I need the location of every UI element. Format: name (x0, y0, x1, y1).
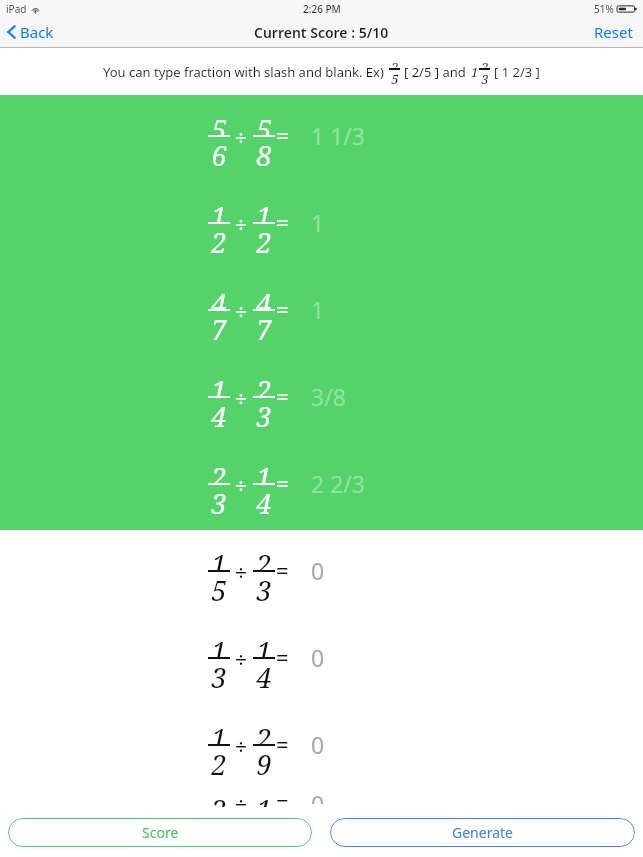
staticText: 2 (211, 746, 227, 775)
staticText: 3 (256, 572, 272, 601)
staticText: 2 2/3 (311, 468, 366, 499)
staticText: 1 (211, 372, 227, 396)
staticText: 2 (256, 372, 272, 396)
button[interactable]: Back (0, 19, 64, 45)
staticText: 51% (594, 2, 614, 16)
staticText: [ 2/5 ] and (404, 63, 466, 81)
staticText: ÷ (235, 646, 248, 675)
staticText: ÷ (235, 385, 248, 414)
button[interactable]: 2 (0, 443, 643, 530)
staticText: 4 (256, 485, 272, 514)
staticText: 7 (211, 311, 227, 340)
button[interactable]: Generate (330, 818, 635, 847)
staticText: 2 (211, 224, 227, 253)
staticText: = (276, 381, 289, 411)
staticText: 4 (256, 285, 272, 309)
staticText: 3 (211, 659, 227, 688)
staticText: 1 (256, 791, 272, 807)
staticText: ÷ (235, 791, 248, 807)
staticText: 1 (471, 63, 479, 81)
staticText: 1 (256, 198, 272, 222)
staticText: = (276, 787, 289, 803)
button[interactable]: 1 (0, 182, 643, 269)
staticText: 3 (211, 485, 227, 514)
button[interactable]: 5 (0, 95, 643, 182)
staticText: You can type fraction with slash and bla… (103, 63, 384, 81)
staticText: 8 (256, 137, 272, 166)
button[interactable]: 1 (0, 617, 643, 704)
button[interactable]: 1 (0, 356, 643, 443)
staticText: 1 (211, 198, 227, 222)
staticText: 2 (256, 720, 272, 744)
staticText: 1 (211, 546, 227, 570)
staticText: = (276, 642, 289, 672)
staticText: 5 (211, 111, 227, 135)
staticText: 2:26 PM (303, 2, 341, 16)
staticText: 0 (311, 555, 325, 586)
button[interactable]: 1 (0, 530, 643, 617)
staticText: 0 (311, 788, 325, 804)
staticText: ÷ (235, 298, 248, 327)
staticText: 1 (256, 633, 272, 657)
staticText: 1 (211, 720, 227, 744)
staticText: iPad (6, 2, 27, 16)
staticText: Reset (594, 22, 633, 42)
staticText: = (276, 294, 289, 324)
staticText: 2 (481, 58, 489, 68)
staticText: 5 (211, 572, 227, 601)
staticText: 7 (256, 311, 272, 340)
staticText: ÷ (235, 733, 248, 762)
staticText: 1 (211, 633, 227, 657)
staticText: ÷ (235, 211, 248, 240)
staticText: 1 (311, 207, 325, 238)
staticText: 6 (211, 137, 227, 166)
staticText: 5 (256, 111, 272, 135)
button[interactable]: 2 (0, 791, 643, 807)
button[interactable]: 1 (0, 704, 643, 791)
staticText: ÷ (235, 472, 248, 501)
staticText: 0 (311, 729, 325, 760)
staticText: Score (142, 823, 179, 842)
staticText: 2 (211, 459, 227, 483)
button[interactable]: Score (8, 818, 312, 847)
button[interactable]: 4 (0, 269, 643, 356)
staticText: 2 (256, 546, 272, 570)
staticText: = (276, 120, 289, 150)
staticText: = (276, 555, 289, 585)
staticText: 5 (391, 70, 399, 85)
staticText: 0 (311, 642, 325, 673)
staticText: = (276, 468, 289, 498)
staticText: [ 1 2/3 ] (494, 63, 540, 81)
staticText: 3 (256, 398, 272, 427)
staticText: 1 (256, 459, 272, 483)
staticText: = (276, 207, 289, 237)
staticText: 9 (256, 746, 272, 775)
staticText: Generate (452, 823, 513, 842)
staticText: ÷ (235, 124, 248, 153)
staticText: 3/8 (311, 381, 346, 412)
staticText: 1 (311, 294, 325, 325)
staticText: 2 (256, 224, 272, 253)
staticText: 3 (481, 70, 489, 85)
button[interactable]: Reset (584, 18, 643, 46)
staticText: 4 (256, 659, 272, 688)
staticText: 2 (391, 58, 399, 68)
staticText: ÷ (235, 559, 248, 588)
staticText: 4 (211, 398, 227, 427)
staticText: Back (20, 22, 54, 42)
staticText: Current Score : 5/10 (254, 23, 389, 42)
staticText: 2 (211, 791, 227, 807)
staticText: 1 1/3 (311, 120, 366, 151)
staticText: 4 (211, 285, 227, 309)
staticText: = (276, 729, 289, 759)
